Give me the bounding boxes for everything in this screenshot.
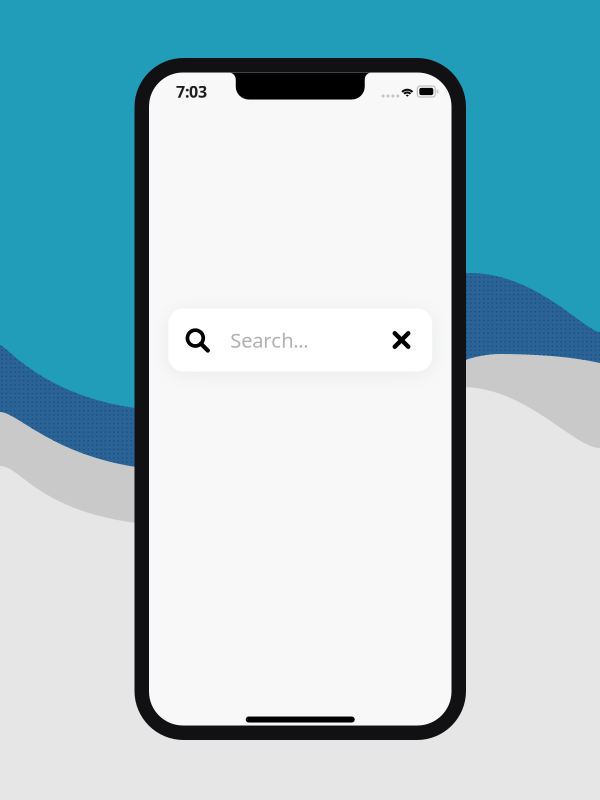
staticText: Search...: [230, 327, 308, 353]
staticText: 7:03: [176, 81, 207, 102]
button[interactable]: Search...: [168, 308, 432, 371]
